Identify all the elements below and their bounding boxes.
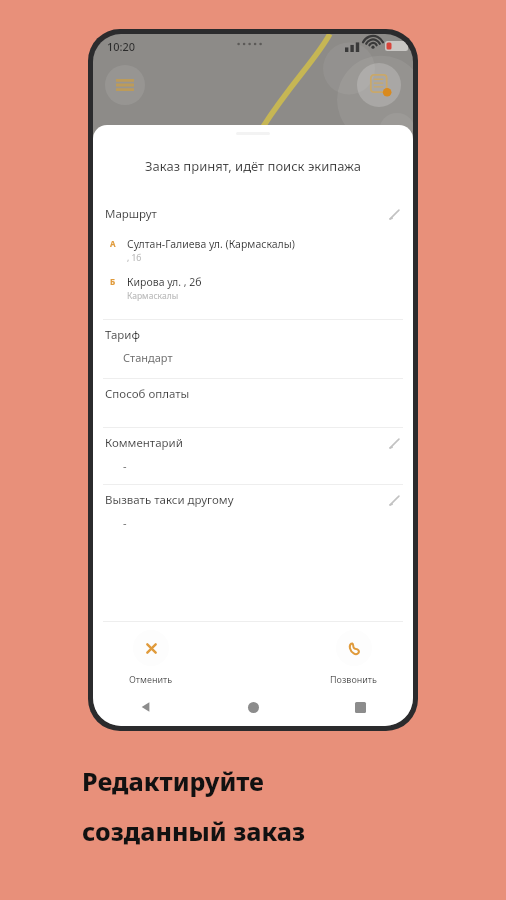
staticText: - [123,458,127,473]
button[interactable]: Recents [343,692,377,722]
staticText: Маршрут [105,206,157,222]
button[interactable]: Home [236,692,270,722]
staticText: - [123,515,127,530]
staticText: A [110,238,116,249]
button[interactable]: Маршрут [93,199,413,229]
staticText: Комментарий [105,435,183,451]
button[interactable]: A [93,237,413,264]
button[interactable]: Тариф [93,320,413,350]
staticText: 10:20 [107,39,136,54]
staticText: Кирова ул. , 2б [127,275,202,289]
staticText: Вызвать такси другому [105,492,234,508]
staticText: Б [110,276,116,287]
button[interactable]: Вызвать такси другому [93,485,413,515]
other: Edit Вызвать такси другому [388,494,401,507]
staticText: Стандарт [123,350,173,365]
staticText: Султан-Галиева ул. (Кармаскалы) [127,237,295,251]
staticText: , 1б [127,252,142,264]
staticText: Позвонить [330,673,377,685]
button[interactable]: Позвонить [322,626,385,689]
staticText: Тариф [105,327,140,343]
staticText: Отменить [129,673,173,685]
staticText: созданный заказ [82,814,306,848]
staticText: Заказ принят, идёт поиск экипажа [145,157,361,175]
staticText: Способ оплаты [105,386,190,402]
other: Edit Маршрут [388,208,401,221]
staticText: Кармаскалы [127,290,179,302]
button[interactable]: Menu [105,65,145,105]
button[interactable]: Orders [357,63,401,107]
other: Edit Комментарий [388,437,401,450]
button[interactable]: Back [129,692,163,722]
button[interactable]: Отменить [121,626,181,689]
button[interactable]: Б [93,275,413,302]
staticText: Редактируйте [82,764,264,798]
button[interactable]: Комментарий [93,428,413,458]
button[interactable]: Способ оплаты [93,379,413,409]
